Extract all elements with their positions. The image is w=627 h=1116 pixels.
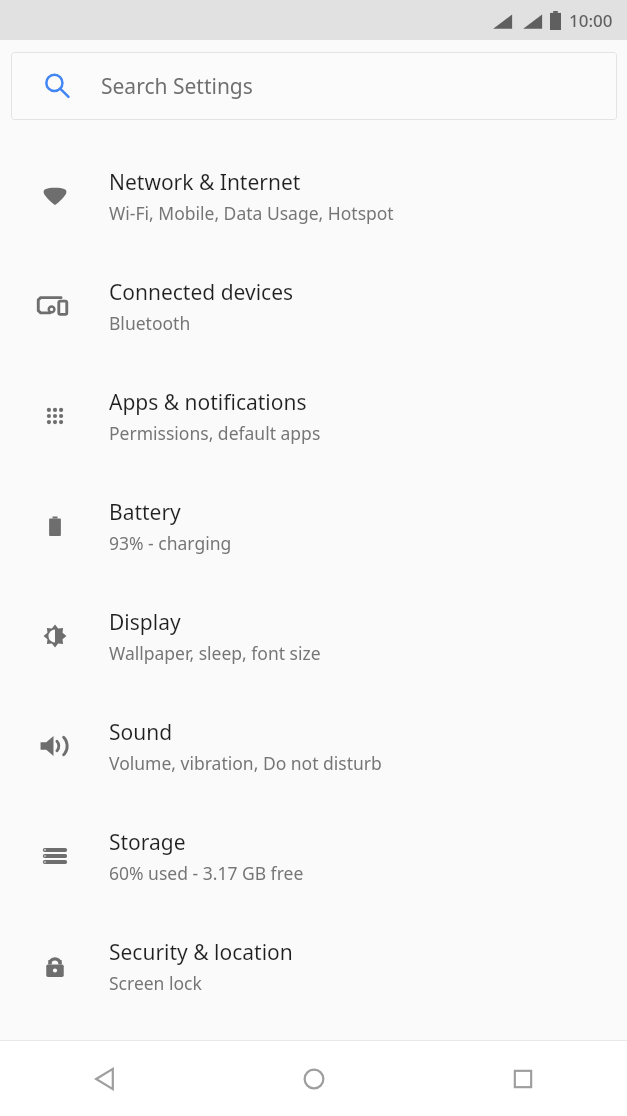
button[interactable]: Connected devices [0,251,627,361]
button[interactable]: Recent apps [418,1041,627,1116]
staticText: Storage [109,828,186,857]
button[interactable]: Security & location [0,911,627,1021]
staticText: 93% - charging [109,531,232,555]
staticText: Sound [109,718,173,747]
button[interactable]: Network & Internet [0,141,627,251]
staticText: Network & Internet [109,168,301,197]
button[interactable]: Back [0,1041,209,1116]
staticText: 60% used - 3.17 GB free [109,861,304,885]
staticText: Battery [109,498,181,527]
staticText: Display [109,608,181,637]
button[interactable]: Apps & notifications [0,361,627,471]
button[interactable]: Storage [0,801,627,911]
button[interactable]: Display [0,581,627,691]
staticText: Apps & notifications [109,388,307,417]
staticText: Screen lock [109,971,202,995]
staticText: Volume, vibration, Do not disturb [109,751,382,775]
staticText: Bluetooth [109,311,191,335]
button[interactable]: Sound [0,691,627,801]
staticText: 10:00 [569,9,613,32]
staticText: Security & location [109,938,293,967]
staticText: Search Settings [101,72,253,101]
staticText: Permissions, default apps [109,421,321,445]
button[interactable]: Home [209,1041,418,1116]
staticText: Wi-Fi, Mobile, Data Usage, Hotspot [109,201,394,225]
button[interactable]: Battery [0,471,627,581]
staticText: Connected devices [109,278,294,307]
staticText: Wallpaper, sleep, font size [109,641,321,665]
button[interactable]: Search Settings [11,52,617,120]
